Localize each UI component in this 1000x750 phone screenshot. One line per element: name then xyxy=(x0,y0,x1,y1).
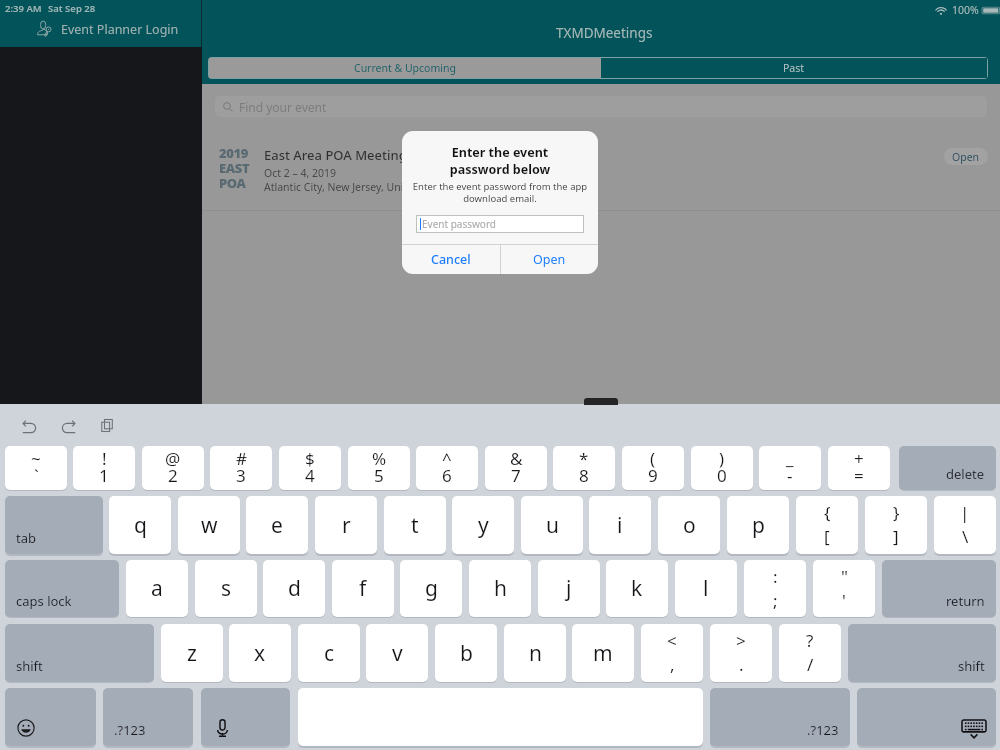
button[interactable]: i xyxy=(589,496,651,554)
button[interactable]: tab xyxy=(5,496,103,554)
button[interactable]: ) xyxy=(691,446,753,490)
button[interactable]: delete xyxy=(899,446,996,490)
button[interactable]: e xyxy=(246,496,308,554)
button[interactable]: Current & Upcoming xyxy=(209,58,601,78)
button[interactable]: n xyxy=(504,624,566,682)
staticText: % xyxy=(372,447,387,470)
button[interactable]: ? xyxy=(779,624,841,682)
staticText: \ xyxy=(962,525,969,548)
staticText: shift xyxy=(16,657,43,675)
button[interactable]: t xyxy=(384,496,446,554)
button[interactable]: Open xyxy=(944,148,988,165)
button[interactable]: b xyxy=(435,624,497,682)
button[interactable]: Paste xyxy=(100,418,115,433)
button[interactable]: .?123 xyxy=(710,688,850,746)
button[interactable]: Cancel xyxy=(402,245,500,274)
staticText: ; xyxy=(773,589,778,612)
staticText: } xyxy=(893,501,900,524)
button[interactable]: .?123 xyxy=(103,688,193,746)
button[interactable]: Dictation xyxy=(201,688,290,746)
button[interactable]: y xyxy=(452,496,514,554)
button[interactable]: % xyxy=(348,446,410,490)
staticText: " xyxy=(841,565,848,588)
button[interactable]: u xyxy=(521,496,583,554)
staticText: ! xyxy=(102,447,107,470)
button[interactable]: : xyxy=(744,560,806,617)
button[interactable]: g xyxy=(400,560,462,617)
button[interactable]: & xyxy=(485,446,547,490)
staticText: 4 xyxy=(305,464,315,487)
staticText: Open xyxy=(533,251,566,268)
button[interactable]: k xyxy=(606,560,668,617)
button[interactable]: > xyxy=(710,624,772,682)
button[interactable]: r xyxy=(315,496,377,554)
button[interactable]: d xyxy=(263,560,325,617)
button[interactable]: f xyxy=(332,560,394,617)
button[interactable]: caps lock xyxy=(5,560,119,617)
staticText: , xyxy=(670,653,675,676)
button[interactable]: o xyxy=(658,496,720,554)
staticText: + xyxy=(854,447,864,470)
button[interactable]: ^ xyxy=(416,446,478,490)
staticText: 2019 EAST POA xyxy=(219,144,250,192)
button[interactable]: ( xyxy=(622,446,684,490)
button[interactable]: s xyxy=(195,560,257,617)
button[interactable]: # xyxy=(210,446,272,490)
button[interactable]: l xyxy=(675,560,737,617)
staticText: z xyxy=(187,639,197,668)
staticText: ? xyxy=(806,629,814,652)
staticText: - xyxy=(787,464,793,487)
staticText: 100% xyxy=(952,3,979,17)
staticText: a xyxy=(151,574,163,603)
button[interactable]: Event password xyxy=(417,216,583,232)
button[interactable]: ~ xyxy=(5,446,67,490)
staticText: tab xyxy=(16,529,36,547)
staticText: TXMDMeetings xyxy=(556,24,653,42)
button[interactable]: Hide keyboard xyxy=(857,688,996,746)
button[interactable]: w xyxy=(178,496,240,554)
button[interactable]: z xyxy=(161,624,223,682)
button[interactable]: c xyxy=(298,624,360,682)
button[interactable]: Emoji xyxy=(5,688,96,746)
staticText: Enter the event password from the app do… xyxy=(410,180,590,205)
button[interactable]: return xyxy=(882,560,996,617)
button[interactable]: Open xyxy=(501,245,598,274)
button[interactable]: j xyxy=(538,560,600,617)
button[interactable]: + xyxy=(828,446,890,490)
button[interactable]: Event Planner Login xyxy=(36,20,179,38)
button[interactable]: shift xyxy=(848,624,996,682)
button[interactable]: | xyxy=(934,496,996,554)
staticText: g xyxy=(425,574,438,603)
button[interactable]: * xyxy=(553,446,615,490)
button[interactable]: < xyxy=(641,624,703,682)
staticText: d xyxy=(288,574,301,603)
button[interactable]: a xyxy=(126,560,188,617)
button[interactable]: 2019 EAST POA xyxy=(202,125,1000,209)
button[interactable]: m xyxy=(572,624,634,682)
button[interactable]: $ xyxy=(279,446,341,490)
button[interactable]: shift xyxy=(5,624,154,682)
button[interactable]: Past xyxy=(601,58,987,78)
button[interactable]: _ xyxy=(759,446,821,490)
button[interactable]: p xyxy=(727,496,789,554)
staticText: ( xyxy=(650,447,656,470)
button[interactable]: v xyxy=(366,624,428,682)
button[interactable]: " xyxy=(813,560,875,617)
button[interactable]: Redo xyxy=(60,418,76,434)
button[interactable]: Undo xyxy=(22,418,38,434)
staticText: q xyxy=(134,511,147,540)
button[interactable]: q xyxy=(109,496,171,554)
button[interactable]: x xyxy=(229,624,291,682)
staticText: ' xyxy=(842,589,846,612)
button[interactable]: { xyxy=(796,496,858,554)
staticText: m xyxy=(593,639,613,668)
button[interactable]: @ xyxy=(142,446,204,490)
button[interactable]: h xyxy=(469,560,531,617)
staticText: Enter the event password below xyxy=(402,144,598,177)
button[interactable]: Find your event xyxy=(215,96,987,117)
staticText: Cancel xyxy=(431,251,471,268)
button[interactable]: } xyxy=(865,496,927,554)
staticText: s xyxy=(221,574,232,603)
button[interactable]: ! xyxy=(73,446,135,490)
